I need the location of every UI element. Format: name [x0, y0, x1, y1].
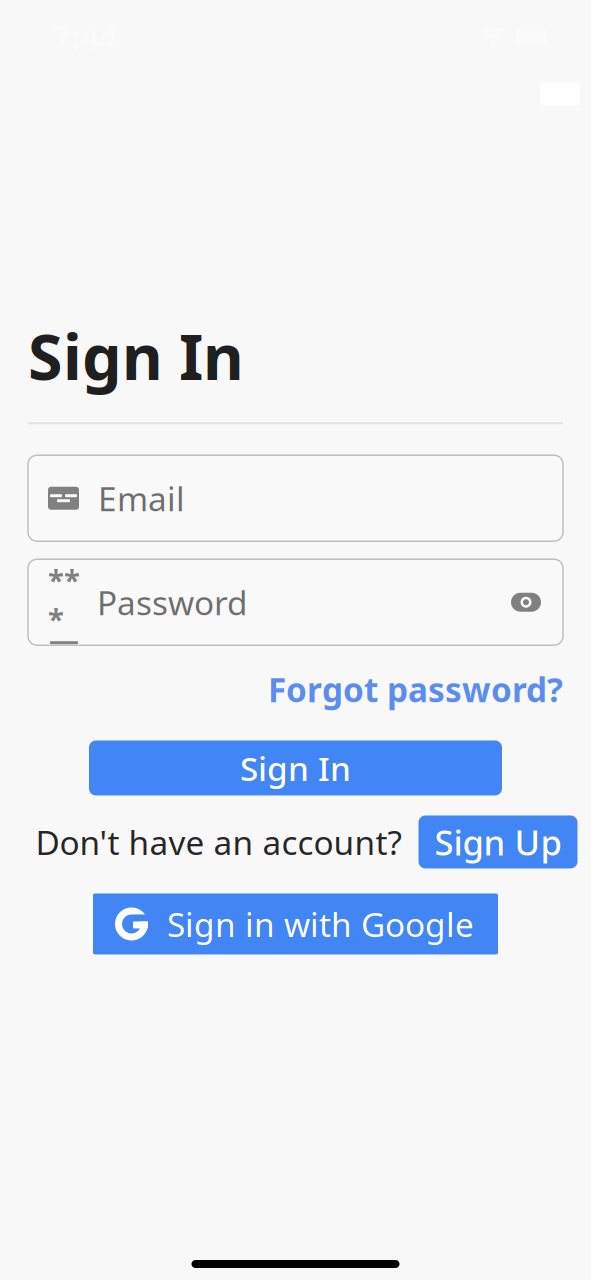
staticText: Password — [97, 580, 248, 624]
button[interactable]: Sign In — [0, 740, 591, 795]
button[interactable]: Sign in with Google — [93, 893, 498, 954]
button[interactable]: Forgot password? — [268, 667, 563, 711]
button[interactable]: *** — [0, 559, 591, 645]
staticText: Sign In — [28, 314, 244, 397]
staticText: Email — [98, 476, 185, 520]
staticText: *** — [48, 560, 80, 638]
staticText: Forgot password? — [268, 667, 563, 711]
staticText: Don't have an account? — [35, 820, 401, 864]
button[interactable]: Sign Up — [418, 815, 577, 868]
staticText: Sign Up — [434, 819, 561, 865]
button[interactable]: Email — [0, 455, 591, 541]
staticText: Sign In — [240, 746, 351, 790]
staticText: Sign in with Google — [167, 902, 474, 946]
